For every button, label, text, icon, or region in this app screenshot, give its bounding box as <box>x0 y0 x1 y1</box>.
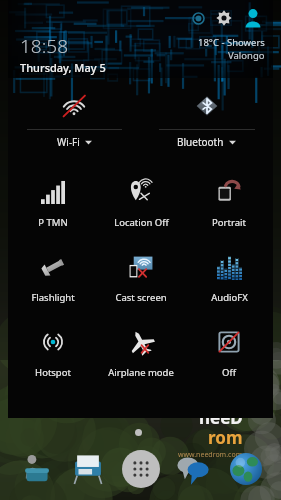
staticText: Location Off <box>114 216 169 229</box>
button[interactable]: All apps <box>118 446 164 492</box>
staticText: AudioFX <box>211 291 248 304</box>
button[interactable]: Off <box>185 318 273 393</box>
button[interactable]: Chat <box>170 446 216 492</box>
staticText: www.needrom.com <box>178 450 243 460</box>
button[interactable]: Browser <box>223 446 269 492</box>
button[interactable]: Bluetooth <box>140 82 273 154</box>
staticText: Off <box>222 366 236 379</box>
staticText: neeD <box>199 406 243 429</box>
staticText: Wi-Fi <box>57 135 80 149</box>
staticText: Valongo <box>228 49 265 62</box>
button[interactable]: Flashlight <box>8 243 97 318</box>
button[interactable]: User profile <box>241 6 265 30</box>
staticText: 18°C - Showers <box>198 36 265 49</box>
staticText: Airplane mode <box>108 366 174 379</box>
staticText: Flashlight <box>31 291 75 304</box>
staticText: Cast screen <box>115 291 167 304</box>
button[interactable]: Portrait <box>185 168 273 243</box>
button[interactable]: Messaging <box>65 446 111 492</box>
button[interactable]: Hotspot <box>8 318 97 393</box>
button[interactable]: AudioFX <box>185 243 273 318</box>
button[interactable]: Phone <box>13 446 59 492</box>
button[interactable]: Cast screen <box>97 243 185 318</box>
staticText: Thursday, May 5 <box>20 60 106 75</box>
button[interactable]: Airplane mode <box>97 318 185 393</box>
staticText: Bluetooth <box>177 135 224 149</box>
button[interactable]: P TMN <box>8 168 97 243</box>
staticText: Portrait <box>212 216 246 229</box>
button[interactable]: Location Off <box>97 168 185 243</box>
staticText: 18:58 <box>20 33 69 59</box>
staticText: P TMN <box>38 216 68 229</box>
staticText: rom <box>208 426 243 449</box>
button[interactable]: Wi-Fi <box>8 82 140 154</box>
button[interactable]: Settings <box>213 7 235 29</box>
staticText: Hotspot <box>35 366 71 379</box>
button[interactable]: Notifications <box>189 9 207 27</box>
button[interactable]: 18°C - Showers <box>198 36 265 62</box>
